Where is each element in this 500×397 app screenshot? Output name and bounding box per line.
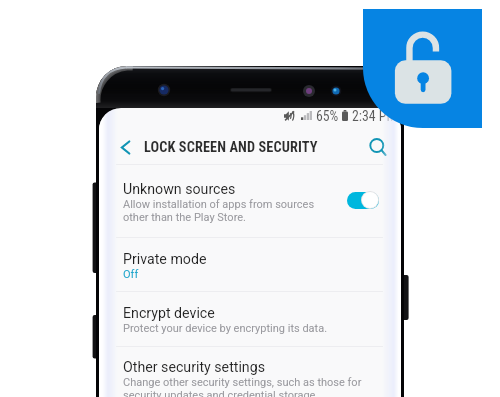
button[interactable]: Other security settings — [99, 347, 401, 397]
staticText: Allow installation of apps from sources … — [123, 198, 315, 224]
staticText: Private mode — [123, 251, 207, 268]
button[interactable]: Unknown sources toggle — [347, 191, 379, 209]
staticText: Protect your device by encrypting its da… — [123, 322, 328, 335]
button[interactable]: Private mode — [99, 238, 401, 291]
button[interactable]: Back — [113, 130, 137, 164]
button[interactable]: Search — [365, 134, 391, 160]
button[interactable]: Unknown sources — [99, 165, 401, 237]
staticText: Other security settings — [123, 359, 265, 376]
staticText: Off — [123, 268, 139, 281]
staticText: LOCK SCREEN AND SECURITY — [144, 139, 318, 156]
staticText: Unknown sources — [123, 181, 236, 198]
staticText: 65% — [316, 108, 339, 123]
staticText: 2:34 PM — [352, 108, 397, 123]
staticText: Encrypt device — [123, 305, 215, 322]
staticText: Change other security settings, such as … — [123, 376, 362, 397]
button[interactable]: Encrypt device — [99, 292, 401, 346]
